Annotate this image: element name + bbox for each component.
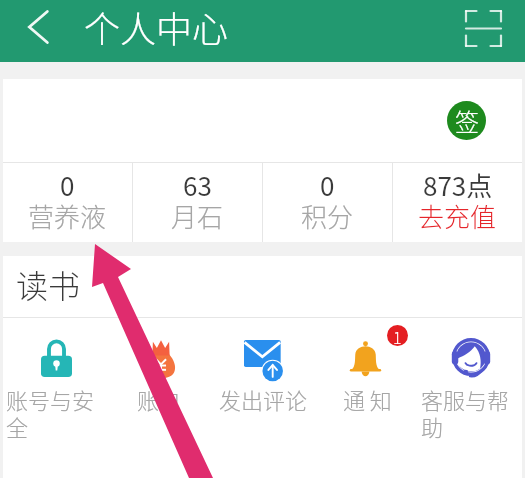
button[interactable]: 账户 — [106, 332, 210, 415]
staticText: 账户 — [137, 383, 182, 415]
staticText: 积分 — [301, 197, 354, 235]
staticText: 客服与帮助 — [421, 383, 521, 443]
staticText: 个人中心 — [84, 1, 229, 53]
button[interactable]: 账号与安全 — [3, 332, 106, 443]
button[interactable]: 客服与帮助 — [418, 332, 522, 443]
button[interactable]: Back — [16, 9, 60, 53]
button[interactable]: 873点 — [393, 163, 522, 242]
staticText: 1 — [393, 325, 402, 346]
staticText: 0 — [60, 166, 75, 204]
staticText: 账号与安全 — [6, 383, 105, 443]
staticText: 0 — [320, 166, 335, 204]
staticText: 873点 — [423, 166, 493, 204]
button[interactable]: 0 — [263, 163, 392, 242]
button[interactable]: Sign in — [447, 101, 486, 140]
button[interactable]: 发出评论 — [210, 332, 314, 415]
staticText: 去充值 — [418, 197, 497, 235]
staticText: 读书 — [16, 261, 81, 307]
staticText: 月石 — [171, 197, 224, 235]
button[interactable]: Scan — [461, 9, 505, 53]
button[interactable]: 1 — [314, 332, 418, 415]
staticText: 63 — [183, 166, 212, 204]
staticText: 发出评论 — [219, 383, 308, 415]
staticText: 签 — [455, 103, 479, 138]
staticText: 通 知 — [343, 383, 392, 415]
staticText: 营养液 — [28, 197, 107, 235]
button[interactable]: 0 — [3, 163, 132, 242]
button[interactable]: 63 — [133, 163, 262, 242]
